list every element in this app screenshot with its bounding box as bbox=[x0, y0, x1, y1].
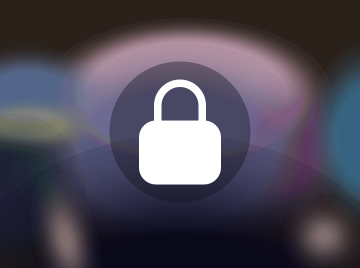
button[interactable]: Locked bbox=[109, 61, 250, 202]
